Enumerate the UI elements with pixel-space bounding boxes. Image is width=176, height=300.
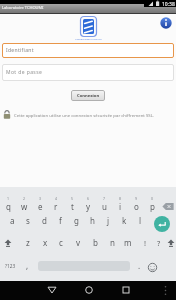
button[interactable]: f [52, 214, 68, 227]
staticText: l [139, 215, 142, 226]
button[interactable]: y [80, 200, 96, 213]
button[interactable]: ?123 [1, 260, 19, 272]
staticText: LABORATOIRES TCHOUMI [75, 38, 102, 41]
button[interactable]: m [120, 236, 136, 249]
staticText: Identifiant [6, 47, 34, 54]
button[interactable]: l [132, 214, 148, 227]
staticText: c [59, 237, 63, 248]
button[interactable]: o [128, 200, 144, 213]
staticText: h [90, 215, 95, 226]
button[interactable]: Identifiant [2, 43, 174, 58]
staticText: ?123 [5, 263, 16, 269]
button[interactable]: ! [137, 236, 153, 249]
button[interactable]: Connexion [71, 90, 105, 101]
button[interactable]: h [84, 214, 100, 227]
button[interactable]: t [64, 200, 80, 213]
button[interactable] [81, 284, 97, 296]
staticText: u [102, 201, 107, 212]
button[interactable]: r [48, 200, 64, 213]
staticText: 9 [135, 196, 138, 201]
button[interactable] [118, 284, 134, 296]
button[interactable]: v [70, 236, 86, 249]
staticText: a [10, 215, 15, 226]
staticText: 1 [7, 196, 10, 201]
button[interactable] [154, 216, 170, 232]
staticText: j [107, 215, 110, 226]
staticText: i [119, 201, 122, 212]
button[interactable]: s [20, 214, 36, 227]
staticText: w [21, 201, 28, 212]
staticText: , [26, 260, 29, 271]
staticText: d [42, 215, 47, 226]
button[interactable]: ? [151, 236, 167, 249]
staticText: ? [157, 238, 161, 248]
button[interactable]: b [87, 236, 103, 249]
staticText: 0 [151, 196, 154, 201]
staticText: v [76, 237, 81, 248]
staticText: Connexion [77, 93, 100, 99]
button[interactable] [147, 262, 158, 273]
staticText: p [150, 201, 155, 212]
button[interactable]: Mot de passe [2, 64, 174, 81]
staticText: Laboratoire TCHOUMI [2, 5, 44, 10]
staticText: Cette application utilise une connexion … [14, 112, 155, 118]
button[interactable]: g [68, 214, 84, 227]
staticText: Mot de passe [6, 69, 43, 76]
button[interactable]: c [53, 236, 69, 249]
button[interactable]: p [144, 200, 160, 213]
staticText: 6 [87, 196, 90, 201]
staticText: 7 [103, 196, 106, 201]
staticText: 4 [55, 196, 58, 201]
staticText: n [110, 237, 115, 248]
button[interactable]: n [104, 236, 120, 249]
button[interactable]: i [112, 200, 128, 213]
button[interactable]: w [16, 200, 32, 213]
button[interactable]: k [116, 214, 132, 227]
button[interactable] [4, 239, 12, 247]
staticText: t [71, 201, 74, 212]
staticText: y [86, 201, 91, 212]
button[interactable]: e [32, 200, 48, 213]
button[interactable]: d [36, 214, 52, 227]
staticText: g [74, 215, 79, 226]
button[interactable]: a [4, 214, 20, 227]
button[interactable]: x [37, 236, 53, 249]
button[interactable]: j [100, 214, 116, 227]
button[interactable]: , [20, 259, 34, 271]
staticText: e [38, 201, 43, 212]
staticText: r [54, 201, 58, 212]
button[interactable] [161, 201, 176, 212]
staticText: . [138, 260, 141, 271]
staticText: z [26, 237, 30, 248]
staticText: 5 [71, 196, 74, 201]
staticText: k [122, 215, 127, 226]
staticText: m [124, 237, 132, 248]
staticText: 3 [39, 196, 42, 201]
staticText: s [26, 215, 30, 226]
button[interactable]: q [0, 200, 16, 213]
button[interactable] [167, 239, 175, 247]
staticText: o [134, 201, 139, 212]
staticText: ! [144, 238, 147, 248]
button[interactable]: u [96, 200, 112, 213]
staticText: q [6, 201, 11, 212]
button[interactable] [160, 17, 172, 29]
button[interactable]: z [20, 236, 36, 249]
staticText: x [43, 237, 48, 248]
staticText: 2 [23, 196, 26, 201]
button[interactable] [44, 284, 60, 296]
staticText: 8 [119, 196, 122, 201]
staticText: 10:38 [162, 1, 175, 8]
staticText: f [59, 215, 62, 226]
staticText: b [93, 237, 98, 248]
button[interactable]: . [132, 259, 146, 271]
